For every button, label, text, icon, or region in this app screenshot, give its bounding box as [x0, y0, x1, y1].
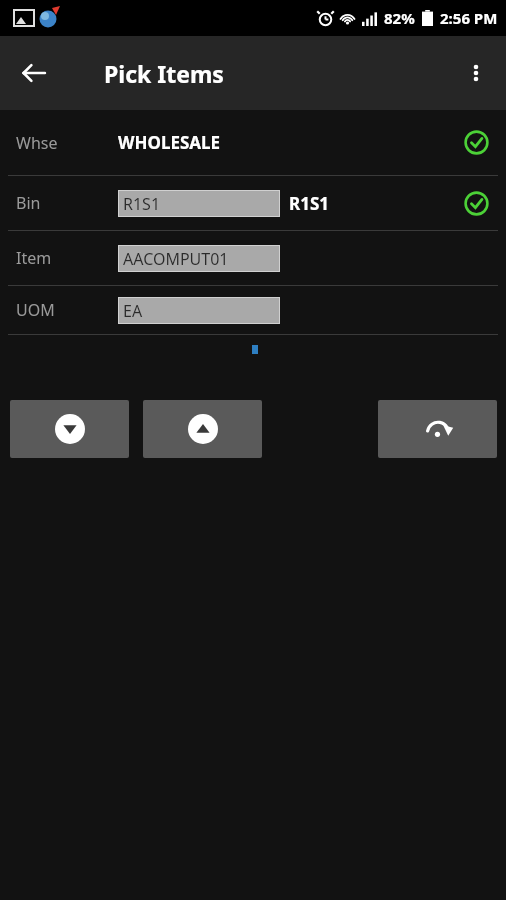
button[interactable]: UOM [0, 286, 506, 334]
button[interactable]: Item [0, 231, 506, 285]
staticText: EA [123, 300, 143, 322]
button[interactable]: Whse [0, 110, 506, 175]
staticText: 2:56 PM [440, 8, 498, 28]
staticText: R1S1 [123, 193, 161, 215]
staticText: 82% [384, 8, 415, 28]
button[interactable]: Scroll down [10, 400, 129, 458]
button[interactable]: R1S1 [118, 190, 280, 217]
staticText: Whse [16, 132, 58, 154]
button[interactable]: EA [118, 297, 280, 324]
staticText: UOM [16, 299, 55, 321]
button[interactable]: Bin [0, 176, 506, 230]
button[interactable]: Scroll up [143, 400, 262, 458]
staticText: R1S1 [289, 192, 329, 215]
button[interactable]: Back [8, 47, 60, 99]
staticText: Bin [16, 192, 41, 214]
staticText: Pick Items [104, 58, 224, 89]
staticText: WHOLESALE [118, 131, 221, 154]
staticText: AACOMPUT01 [123, 248, 229, 270]
button[interactable]: Rotate [378, 400, 497, 458]
button[interactable]: AACOMPUT01 [118, 245, 280, 272]
button[interactable]: More options [452, 49, 500, 97]
staticText: Item [16, 247, 52, 269]
